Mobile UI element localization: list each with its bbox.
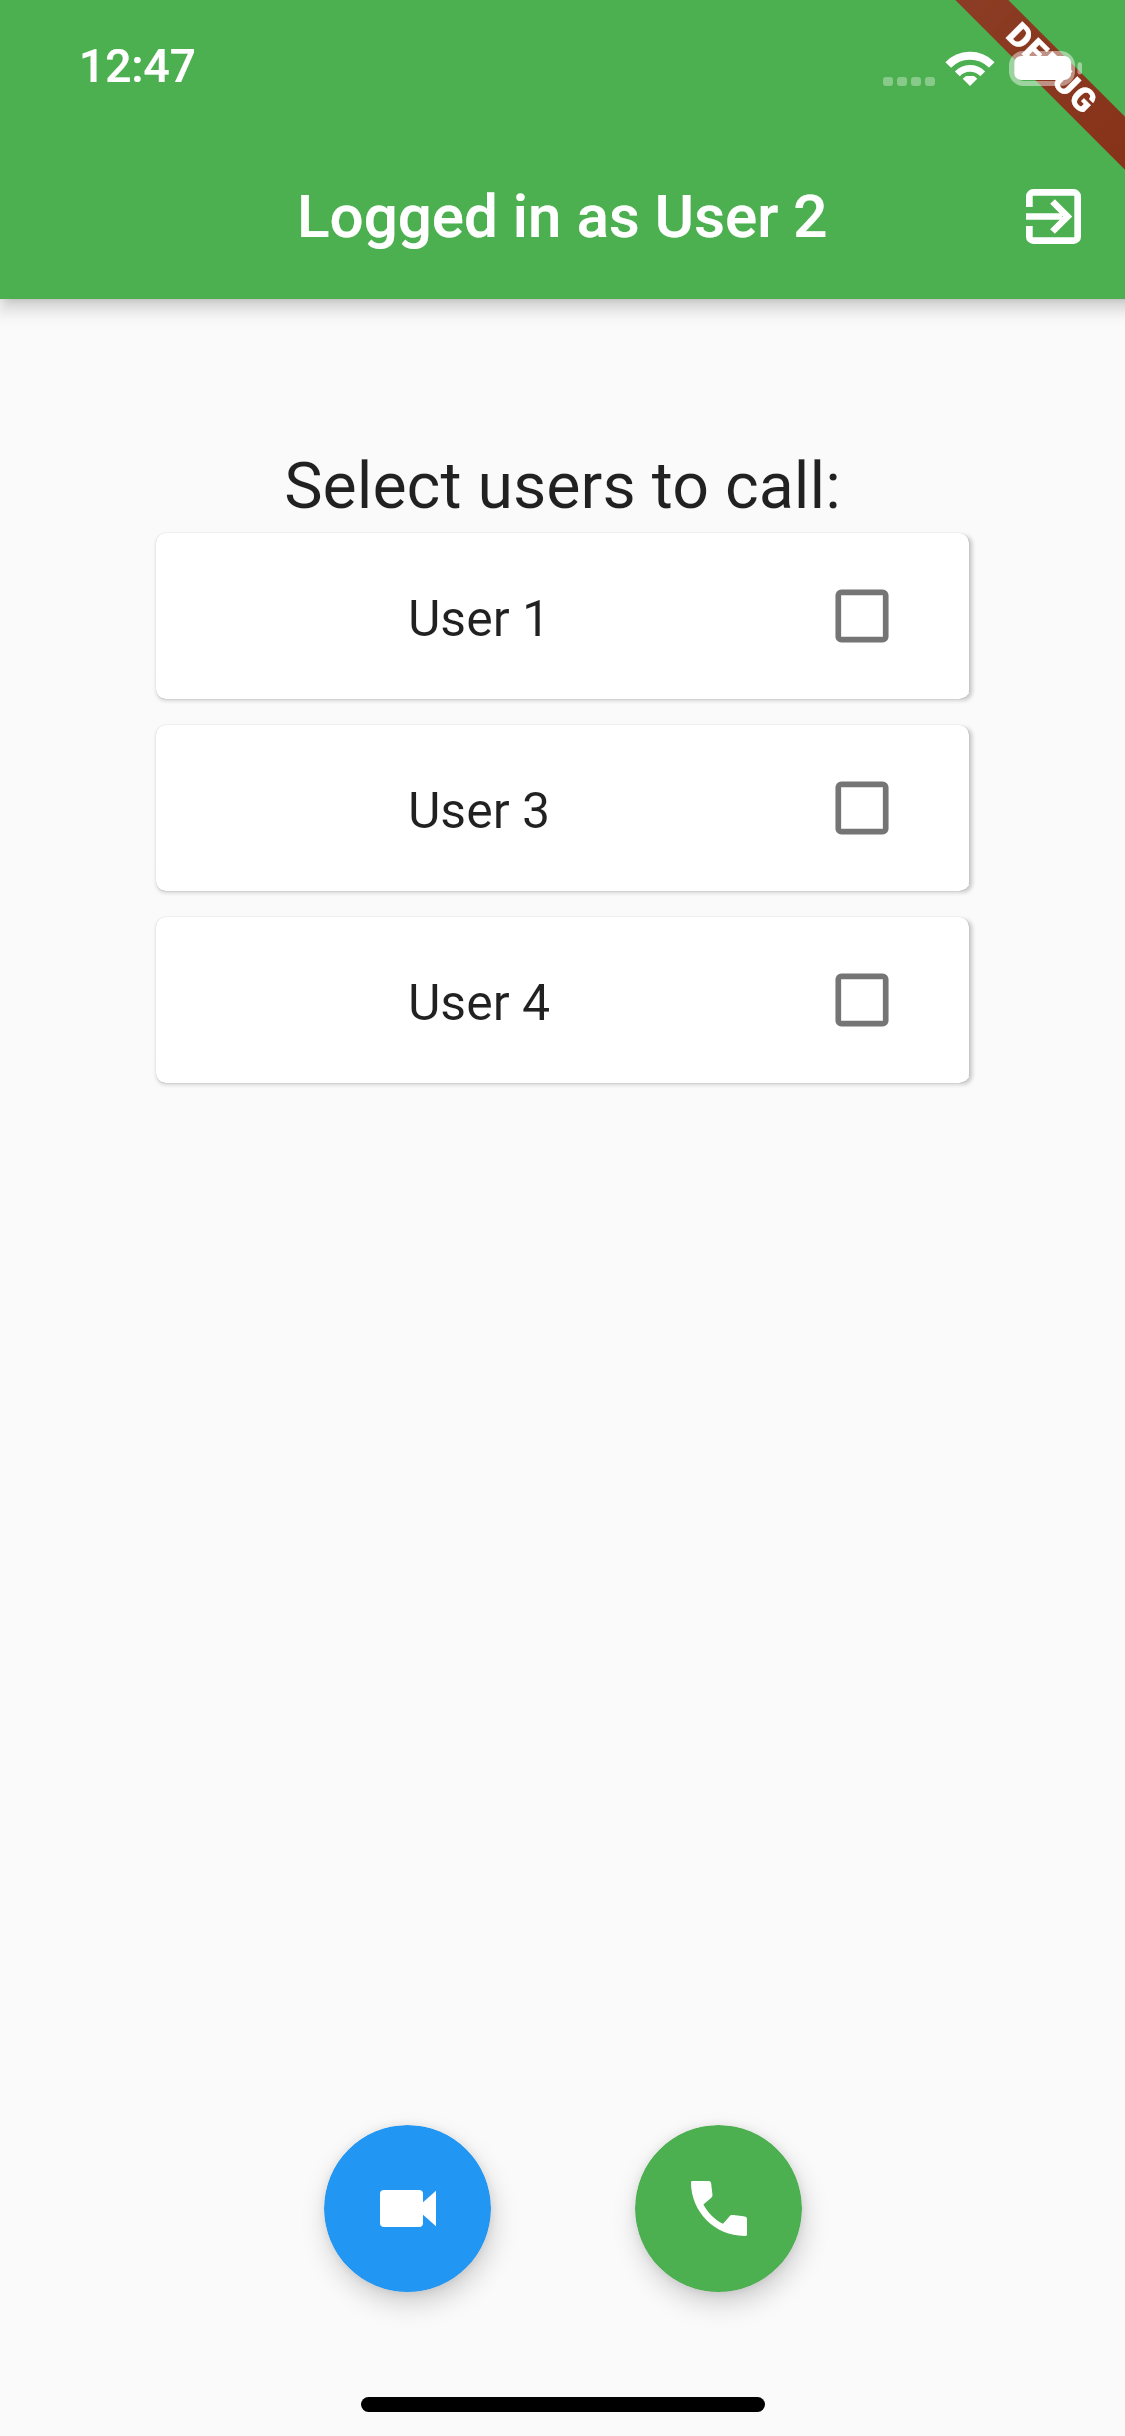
staticText: DEBUG [999,15,1106,122]
button[interactable]: Select User 1 [790,544,934,688]
button[interactable]: User 3 [156,725,969,891]
button[interactable]: Select User 3 [790,736,934,880]
staticText: 12:47 [79,39,196,93]
staticText: Select users to call: [0,448,1125,524]
button[interactable]: Log out [981,144,1125,288]
staticText: User 3 [168,782,790,841]
button[interactable]: Start voice call [635,2125,802,2292]
staticText: User 4 [168,974,790,1033]
staticText: Logged in as User 2 [297,181,828,251]
button[interactable]: User 1 [156,533,969,699]
button[interactable]: User 4 [156,917,969,1083]
button[interactable]: Start video call [324,2125,491,2292]
button[interactable]: Select User 4 [790,928,934,1072]
staticText: User 1 [168,590,790,649]
